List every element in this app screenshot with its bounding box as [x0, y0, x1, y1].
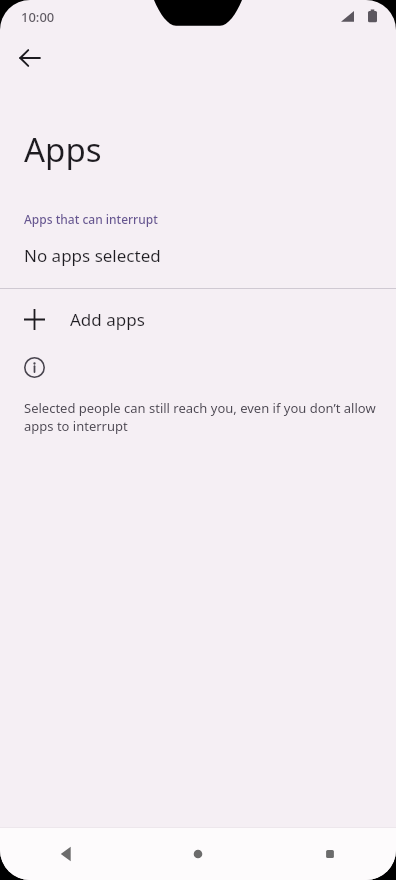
staticText: No apps selected [24, 244, 161, 267]
button[interactable]: Back [0, 828, 132, 880]
staticText: 10:00 [21, 8, 55, 26]
button[interactable]: Recent apps [264, 828, 396, 880]
button[interactable]: Home [132, 828, 264, 880]
staticText: Apps that can interrupt [24, 211, 158, 227]
staticText: Selected people can still reach you, eve… [24, 399, 376, 435]
staticText: Apps [24, 127, 102, 172]
staticText: Add apps [70, 308, 145, 331]
button[interactable]: Back [6, 34, 54, 82]
button[interactable]: Add apps [0, 289, 396, 349]
